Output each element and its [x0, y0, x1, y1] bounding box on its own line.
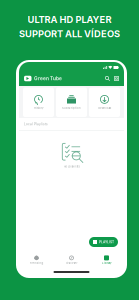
staticText: PLAYLIST: [99, 240, 114, 244]
button[interactable]: Subscription: [56, 87, 87, 117]
staticText: ULTRA HD PLAYER: [27, 14, 111, 25]
button[interactable]: Library: [89, 255, 124, 265]
button[interactable]: History: [23, 87, 54, 117]
staticText: Library: [102, 261, 111, 265]
button[interactable]: Trending: [19, 255, 54, 265]
button[interactable]: PLAYLIST: [89, 237, 118, 247]
staticText: Green Tube: [34, 76, 62, 81]
staticText: No playlists: [63, 165, 79, 168]
button[interactable]: Discover: [54, 255, 89, 265]
button[interactable]: Download: [89, 87, 120, 117]
button[interactable]: Cast: [111, 76, 119, 81]
staticText: SUPPORT ALL VÍDEOS: [19, 28, 120, 40]
button[interactable]: Search: [104, 76, 111, 81]
staticText: Local Playlists: [24, 122, 48, 126]
staticText: Download: [97, 106, 111, 110]
staticText: History: [34, 106, 43, 110]
staticText: Subscription: [62, 106, 81, 110]
staticText: Trending: [29, 261, 43, 265]
staticText: Discover: [65, 261, 77, 265]
button[interactable]: Green Tube: [24, 76, 62, 81]
